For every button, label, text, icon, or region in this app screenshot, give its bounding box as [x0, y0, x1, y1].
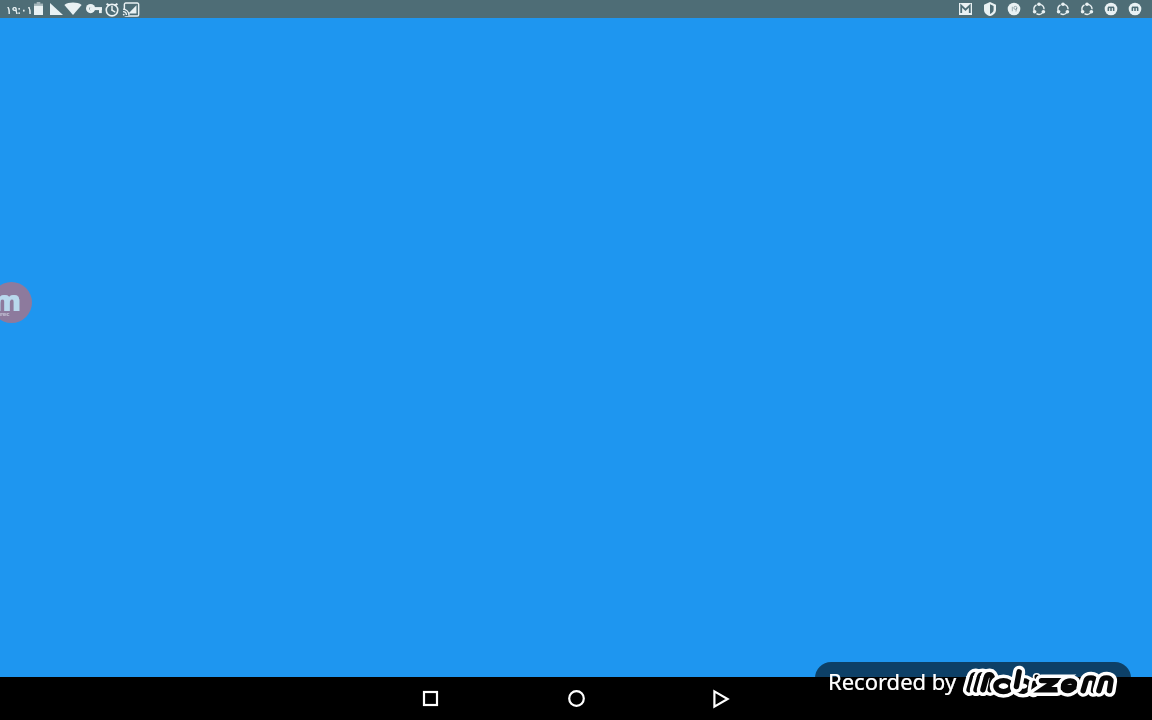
button[interactable]: Recent apps — [406, 677, 454, 720]
staticText: Recorded by — [828, 666, 957, 696]
button[interactable]: Back — [697, 677, 745, 720]
button[interactable]: Home — [552, 677, 600, 720]
button[interactable]: Mobizen recorder — [0, 282, 32, 323]
staticText: ١٩:٠١ — [6, 2, 33, 17]
staticText: m — [0, 282, 22, 319]
staticText: rec — [0, 310, 10, 318]
